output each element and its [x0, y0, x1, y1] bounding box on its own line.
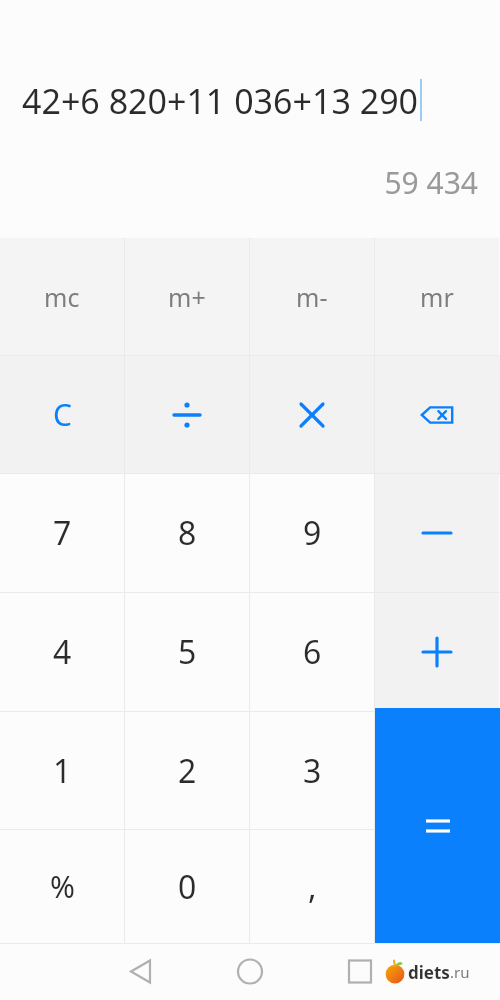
staticText: .ru: [450, 962, 470, 982]
staticText: 5: [178, 630, 197, 674]
button[interactable]: 9: [250, 474, 374, 592]
button[interactable]: Equals: [375, 708, 500, 943]
button[interactable]: 2: [125, 712, 249, 829]
button[interactable]: 3: [250, 712, 374, 829]
staticText: 2: [178, 749, 197, 793]
button[interactable]: 7: [0, 474, 124, 592]
staticText: mr: [420, 280, 454, 314]
button[interactable]: ,: [250, 830, 374, 943]
button[interactable]: 6: [250, 593, 374, 711]
staticText: 8: [178, 511, 197, 555]
button[interactable]: Backspace: [375, 356, 499, 473]
button[interactable]: 0: [125, 830, 249, 943]
staticText: m+: [168, 280, 206, 314]
staticText: 3: [303, 749, 322, 793]
staticText: mc: [44, 280, 80, 314]
button[interactable]: Plus: [375, 593, 499, 711]
staticText: m-: [296, 280, 328, 314]
staticText: 7: [53, 511, 72, 555]
staticText: 4: [53, 630, 72, 674]
staticText: diets: [408, 961, 450, 984]
staticText: 0: [178, 865, 197, 909]
button[interactable]: 1: [0, 712, 124, 829]
staticText: 59 434: [384, 162, 478, 203]
button[interactable]: C: [0, 356, 124, 473]
button[interactable]: Back: [118, 943, 500, 1000]
button[interactable]: m-: [250, 238, 374, 355]
staticText: 1: [53, 749, 72, 793]
staticText: %: [50, 866, 75, 907]
staticText: 42+6 820+11 036+13 290: [22, 78, 419, 124]
button[interactable]: 4: [0, 593, 124, 711]
button[interactable]: Minus: [375, 474, 499, 592]
button[interactable]: 8: [125, 474, 249, 592]
button[interactable]: mr: [375, 238, 499, 355]
button[interactable]: %: [0, 830, 124, 943]
button[interactable]: Multiply: [250, 356, 374, 473]
staticText: 6: [303, 630, 322, 674]
staticText: ,: [308, 865, 317, 909]
staticText: 9: [303, 511, 322, 555]
staticText: C: [53, 394, 72, 435]
button[interactable]: 5: [125, 593, 249, 711]
button[interactable]: Divide: [125, 356, 249, 473]
button[interactable]: mc: [0, 238, 124, 355]
button[interactable]: m+: [125, 238, 249, 355]
